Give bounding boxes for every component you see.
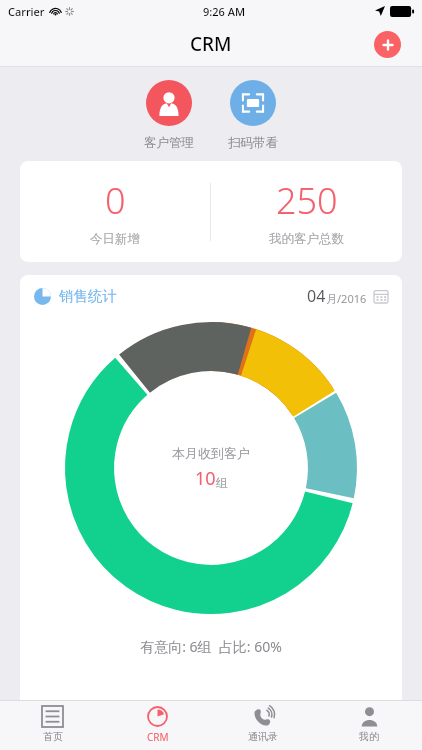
button[interactable]: 客户管理	[127, 67, 211, 151]
staticText: CRM	[190, 31, 232, 57]
staticText: 本月收到客户	[172, 445, 250, 461]
button[interactable]: 扫码带看	[211, 67, 295, 151]
staticText: 有意向: 6组 占比: 60%	[20, 637, 402, 656]
button[interactable]: 0	[20, 176, 210, 247]
staticText: 销售统计	[59, 287, 117, 305]
button[interactable]: Add	[374, 31, 401, 58]
staticText: 10	[195, 466, 216, 491]
staticText: 客户管理	[144, 135, 194, 151]
staticText: 今日新增	[90, 231, 140, 247]
staticText: Carrier	[8, 4, 45, 19]
staticText: 9:26 AM	[203, 4, 246, 19]
button[interactable]: 首页	[0, 701, 105, 750]
button[interactable]: 250	[211, 176, 402, 247]
staticText: 04	[307, 285, 326, 307]
staticText: 组	[216, 475, 228, 490]
staticText: 扫码带看	[228, 135, 278, 151]
button[interactable]: Pick month	[374, 289, 388, 303]
staticText: 我的	[359, 730, 379, 743]
button[interactable]: CRM	[105, 701, 210, 750]
staticText: 通讯录	[248, 730, 278, 743]
staticText: 250	[276, 176, 338, 225]
staticText: 月/2016	[326, 291, 367, 306]
staticText: 0	[105, 176, 126, 225]
button[interactable]: 通讯录	[210, 701, 316, 750]
button[interactable]: 我的	[316, 701, 422, 750]
staticText: CRM	[147, 730, 169, 744]
staticText: 首页	[43, 730, 63, 743]
staticText: 我的客户总数	[269, 231, 344, 247]
